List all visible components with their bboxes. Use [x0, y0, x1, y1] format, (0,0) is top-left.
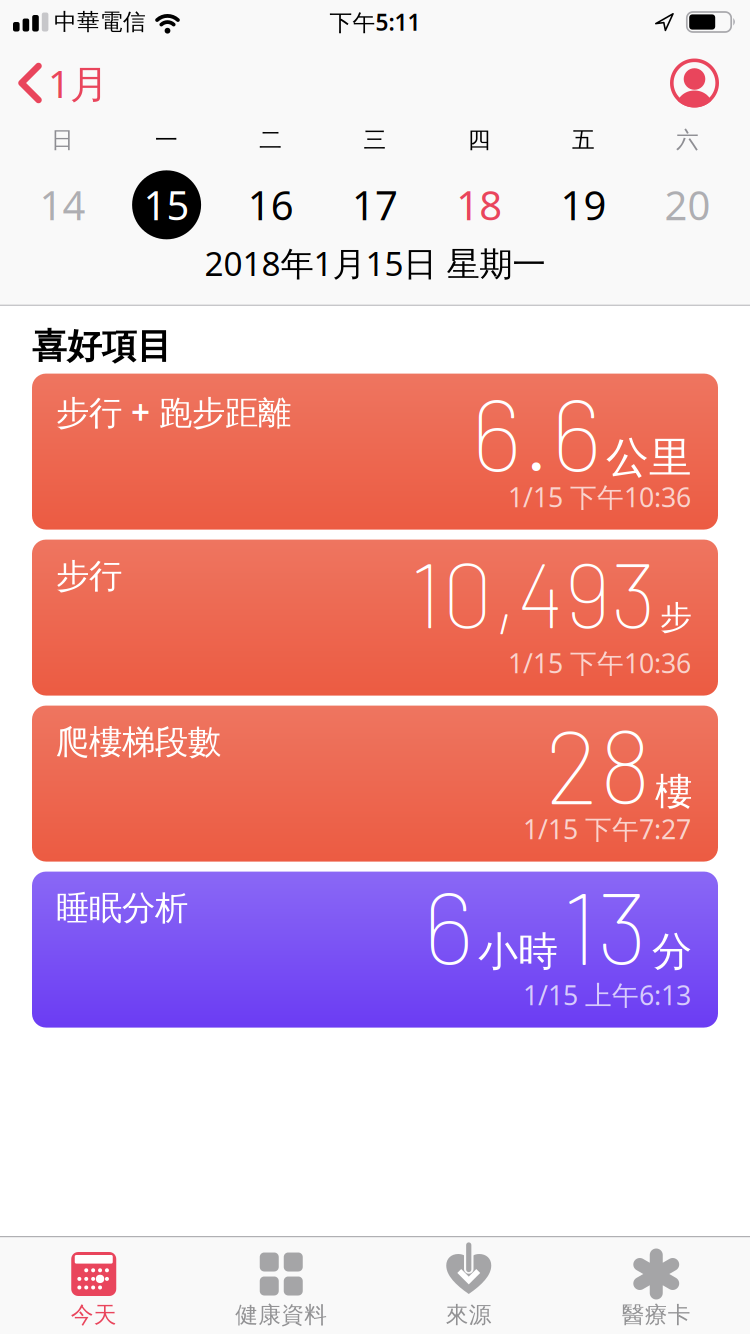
- staticText: 2018年1月15日 星期一: [204, 241, 545, 285]
- staticText: 1/15 上午6:13: [523, 977, 691, 1013]
- button[interactable]: 20: [635, 169, 740, 241]
- button[interactable]: 19: [531, 169, 635, 241]
- button[interactable]: 爬樓梯段數: [32, 706, 718, 862]
- staticText: 16: [248, 178, 294, 231]
- staticText: 19: [560, 178, 606, 231]
- staticText: 今天: [71, 1301, 117, 1329]
- staticText: 醫療卡: [622, 1301, 691, 1329]
- staticText: 中華電信: [54, 8, 146, 36]
- staticText: 來源: [446, 1301, 492, 1329]
- staticText: 樓: [655, 769, 692, 815]
- staticText: 1/15 下午7:27: [523, 811, 691, 847]
- button[interactable]: 16: [219, 169, 323, 241]
- button[interactable]: 步行: [32, 540, 718, 696]
- staticText: 1/15 下午10:36: [508, 479, 691, 515]
- staticText: 17: [352, 178, 398, 231]
- staticText: 四: [468, 126, 491, 154]
- button[interactable]: 17: [323, 169, 427, 241]
- staticText: 一: [155, 126, 178, 154]
- staticText: 公里: [606, 431, 692, 484]
- staticText: 13: [562, 864, 648, 985]
- button[interactable]: 來源: [375, 1252, 562, 1329]
- staticText: 1月: [48, 57, 109, 109]
- staticText: 20: [665, 178, 711, 231]
- staticText: 15: [144, 178, 190, 231]
- staticText: 步: [660, 598, 692, 637]
- staticText: 分: [652, 927, 692, 976]
- staticText: 健康資料: [235, 1301, 327, 1329]
- button[interactable]: 步行 + 跑步距離: [32, 374, 718, 530]
- staticText: 五: [572, 126, 595, 154]
- staticText: 喜好項目: [32, 325, 172, 368]
- button[interactable]: 15: [114, 169, 219, 241]
- button[interactable]: 今天: [0, 1252, 187, 1329]
- button[interactable]: 醫療卡: [562, 1252, 750, 1329]
- staticText: 14: [39, 178, 85, 231]
- staticText: 二: [259, 126, 282, 154]
- staticText: 18: [456, 178, 502, 231]
- button[interactable]: 睡眠分析: [32, 872, 718, 1028]
- button[interactable]: 健康資料: [187, 1252, 375, 1329]
- button[interactable]: [670, 58, 719, 107]
- staticText: 日: [51, 126, 74, 154]
- staticText: 10,493: [410, 538, 656, 646]
- button[interactable]: 1月: [18, 57, 109, 109]
- staticText: 下午5:11: [329, 7, 420, 37]
- button[interactable]: 14: [10, 169, 114, 241]
- button[interactable]: 18: [427, 169, 531, 241]
- staticText: 爬樓梯段數: [56, 722, 221, 762]
- staticText: 睡眠分析: [56, 888, 188, 928]
- staticText: 步行: [56, 556, 122, 596]
- staticText: 28: [545, 702, 651, 825]
- staticText: 6.6: [471, 371, 602, 492]
- staticText: 步行 + 跑步距離: [56, 390, 291, 434]
- staticText: 6: [423, 864, 474, 985]
- staticText: 三: [363, 126, 386, 154]
- staticText: 1/15 下午10:36: [508, 645, 691, 681]
- staticText: 六: [676, 126, 699, 154]
- staticText: 小時: [478, 927, 558, 976]
